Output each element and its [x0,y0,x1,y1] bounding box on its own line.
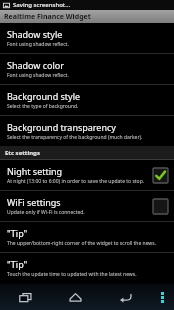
staticText: Select the type of background. [7,103,79,110]
staticText: Font using shadow reflect. [7,72,69,79]
staticText: Touch the update time to updated with th… [7,271,137,278]
staticText: Shadow color [7,59,65,71]
staticText: "Tip" [7,258,28,270]
staticText: The upper/bottom-right corner of the wid… [7,240,157,247]
staticText: At night (13:00 to 6:00) in order to sav… [7,178,145,185]
button[interactable]: Home [50,284,100,310]
staticText: Background transparency [7,121,116,133]
button[interactable]: Shadow color [0,54,174,84]
button[interactable]: Checked [152,167,169,184]
staticText: Shadow style [7,28,63,40]
button[interactable]: Back [100,284,150,310]
button[interactable]: Recents [0,284,50,310]
staticText: WiFi settings [7,196,61,208]
staticText: Update only if Wi-Fi is connected. [7,209,85,216]
button[interactable]: "Tip" [0,253,174,283]
button[interactable]: Background transparency [0,116,174,146]
staticText: Etc settings [5,149,40,157]
button[interactable]: WiFi settings [0,191,174,221]
staticText: Background style [7,90,81,102]
button[interactable]: Background style [0,85,174,115]
staticText: Saving screenshot… [13,1,70,9]
staticText: Realtime Finance Widget [4,12,91,22]
staticText: "Tip" [7,227,28,239]
button[interactable]: Night setting [0,160,174,190]
staticText: Select the transparency of the backgroun… [7,134,143,141]
button[interactable]: More options [150,284,174,310]
button[interactable]: "Tip" [0,222,174,252]
staticText: Night setting [7,165,63,177]
button[interactable]: Shadow style [0,23,174,53]
button[interactable]: Unchecked [152,198,169,215]
staticText: Font using shadow reflect. [7,41,69,48]
